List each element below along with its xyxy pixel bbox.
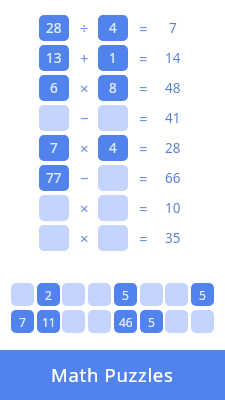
- staticText: 7: [169, 19, 177, 37]
- staticText: ×: [80, 78, 89, 98]
- staticText: ×: [80, 138, 89, 158]
- staticText: 66: [165, 169, 181, 187]
- staticText: 28: [46, 19, 62, 37]
- button[interactable]: 28: [39, 15, 69, 41]
- staticText: =: [139, 198, 148, 218]
- button[interactable]: 8: [98, 75, 128, 101]
- button[interactable]: Math Puzzles: [0, 350, 225, 400]
- button[interactable]: 1: [98, 45, 128, 71]
- button[interactable]: Empty second operand, row 4: [98, 105, 128, 131]
- button[interactable]: Empty first operand, row 4: [39, 105, 69, 131]
- staticText: 35: [165, 229, 181, 247]
- staticText: ×: [80, 198, 89, 218]
- staticText: 7: [19, 314, 26, 330]
- staticText: 48: [165, 79, 181, 97]
- staticText: =: [139, 168, 148, 188]
- staticText: ×: [80, 228, 89, 248]
- staticText: 13: [46, 49, 62, 67]
- button[interactable]: 11: [37, 310, 60, 333]
- staticText: =: [139, 78, 148, 98]
- staticText: 7: [50, 139, 58, 157]
- staticText: =: [139, 138, 148, 158]
- button[interactable]: Empty tray slot 2-7: [165, 310, 188, 333]
- button[interactable]: 6: [39, 75, 69, 101]
- staticText: 5: [148, 314, 155, 330]
- button[interactable]: 2: [37, 283, 60, 306]
- button[interactable]: 5: [140, 310, 163, 333]
- button[interactable]: 4: [98, 135, 128, 161]
- staticText: 11: [42, 314, 56, 330]
- button[interactable]: 13: [39, 45, 69, 71]
- staticText: 41: [165, 109, 181, 127]
- staticText: +: [80, 48, 89, 68]
- staticText: 28: [165, 139, 181, 157]
- staticText: 4: [109, 139, 117, 157]
- button[interactable]: Empty first operand, row 7: [39, 195, 69, 221]
- staticText: −: [80, 168, 89, 188]
- staticText: 5: [122, 287, 129, 303]
- staticText: 8: [109, 79, 117, 97]
- button[interactable]: 5: [191, 283, 214, 306]
- button[interactable]: Empty tray slot 1-1: [11, 283, 34, 306]
- button[interactable]: 46: [114, 310, 137, 333]
- button[interactable]: Empty tray slot 2-8: [191, 310, 214, 333]
- staticText: −: [80, 108, 89, 128]
- staticText: 14: [165, 49, 181, 67]
- button[interactable]: Empty tray slot 1-4: [88, 283, 111, 306]
- button[interactable]: 7: [39, 135, 69, 161]
- button[interactable]: 7: [11, 310, 34, 333]
- staticText: 1: [109, 49, 117, 67]
- staticText: Math Puzzles: [51, 362, 174, 387]
- button[interactable]: Empty tray slot 1-6: [140, 283, 163, 306]
- button[interactable]: Empty second operand, row 6: [98, 165, 128, 191]
- staticText: =: [139, 18, 148, 38]
- staticText: 2: [45, 287, 52, 303]
- button[interactable]: Empty tray slot 1-3: [62, 283, 85, 306]
- button[interactable]: Empty tray slot 1-7: [165, 283, 188, 306]
- staticText: =: [139, 48, 148, 68]
- staticText: 10: [165, 199, 181, 217]
- staticText: 4: [109, 19, 117, 37]
- button[interactable]: 5: [114, 283, 137, 306]
- button[interactable]: 4: [98, 15, 128, 41]
- button[interactable]: Empty tray slot 2-4: [88, 310, 111, 333]
- staticText: 5: [199, 287, 206, 303]
- staticText: ÷: [80, 18, 89, 38]
- button[interactable]: Empty second operand, row 7: [98, 195, 128, 221]
- button[interactable]: Empty tray slot 2-3: [62, 310, 85, 333]
- button[interactable]: Empty first operand, row 8: [39, 225, 69, 251]
- button[interactable]: 77: [39, 165, 69, 191]
- staticText: 6: [50, 79, 58, 97]
- button[interactable]: Empty second operand, row 8: [98, 225, 128, 251]
- staticText: 46: [119, 314, 133, 330]
- staticText: =: [139, 228, 148, 248]
- staticText: 77: [46, 169, 62, 187]
- staticText: =: [139, 108, 148, 128]
